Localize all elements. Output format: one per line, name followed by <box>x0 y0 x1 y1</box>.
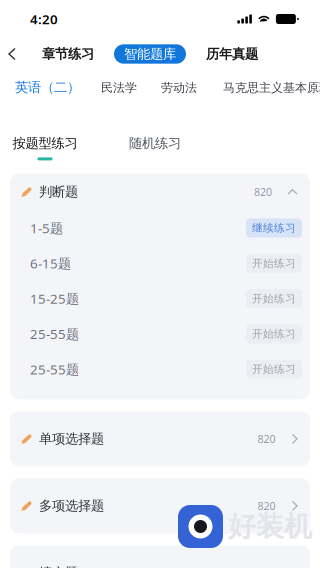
staticText: 820 <box>257 432 275 446</box>
staticText: 好装机 <box>228 509 312 544</box>
button[interactable]: 劳动法 <box>161 76 197 99</box>
staticText: 820 <box>257 499 275 513</box>
button[interactable]: 马克思主义基本原理概论 <box>223 76 320 99</box>
staticText: 25-55题 <box>30 360 79 378</box>
button[interactable]: 6-15题 <box>10 246 310 281</box>
button[interactable]: 填空题 <box>10 545 310 568</box>
button[interactable]: 按题型练习 <box>0 135 89 160</box>
button[interactable]: 历年真题 <box>206 41 258 67</box>
staticText: 民法学 <box>101 80 137 95</box>
staticText: 英语（二） <box>15 79 80 95</box>
staticText: 历年真题 <box>206 46 258 62</box>
staticText: 继续练习 <box>252 221 296 235</box>
button[interactable]: Back <box>1 40 23 67</box>
button[interactable]: 民法学 <box>101 76 137 99</box>
staticText: 随机练习 <box>129 135 181 151</box>
staticText: 开始练习 <box>252 292 296 305</box>
button[interactable]: 判断题 <box>10 173 310 210</box>
staticText: 15-25题 <box>30 290 79 307</box>
button[interactable]: 多项选择题 <box>10 478 310 533</box>
staticText: 820 <box>254 185 272 199</box>
staticText: 4:20 <box>30 10 58 28</box>
staticText: 按题型练习 <box>12 135 77 151</box>
staticText: 单项选择题 <box>39 431 104 447</box>
button[interactable]: 英语（二） <box>15 75 80 99</box>
button[interactable]: 随机练习 <box>117 135 193 160</box>
staticText: 开始练习 <box>252 327 296 340</box>
staticText: 判断题 <box>39 184 78 200</box>
button[interactable]: 1-5题 <box>10 210 310 246</box>
staticText: 开始练习 <box>252 257 296 270</box>
button[interactable]: 25-55题 <box>10 352 310 387</box>
staticText: 章节练习 <box>42 46 94 62</box>
staticText: 多项选择题 <box>39 498 104 514</box>
button[interactable]: 智能题库 <box>114 44 186 64</box>
staticText: 6-15题 <box>30 254 71 272</box>
button[interactable]: 15-25题 <box>10 281 310 316</box>
button[interactable]: 25-55题 <box>10 316 310 352</box>
staticText: 马克思主义基本原理概论 <box>223 80 320 95</box>
staticText: 智能题库 <box>124 46 176 62</box>
staticText: 25-55题 <box>30 325 79 343</box>
staticText: 填空题 <box>39 565 78 568</box>
button[interactable]: 单项选择题 <box>10 411 310 466</box>
staticText: 开始练习 <box>252 363 296 376</box>
staticText: 劳动法 <box>161 80 197 95</box>
staticText: 1-5题 <box>30 219 63 237</box>
